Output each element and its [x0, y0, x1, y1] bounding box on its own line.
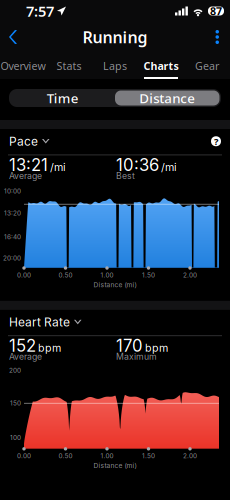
button[interactable]: Back — [0, 23, 31, 51]
staticText: 200 — [9, 366, 21, 374]
staticText: ? — [214, 135, 218, 147]
staticText: 150 — [10, 399, 21, 407]
button[interactable]: Overview — [0, 52, 46, 79]
staticText: 2.00 — [183, 452, 197, 460]
button[interactable]: Distance — [115, 90, 219, 105]
button[interactable]: More options — [201, 23, 230, 51]
staticText: Overview — [0, 59, 45, 73]
staticText: 7:57 — [26, 1, 54, 21]
button[interactable]: Stats — [46, 52, 92, 79]
staticText: 1.00 — [100, 452, 113, 460]
staticText: Stats — [56, 59, 81, 73]
staticText: /mi — [50, 160, 66, 173]
staticText: Distance (mi) — [93, 281, 136, 289]
staticText: 16:40 — [4, 233, 21, 241]
button[interactable]: Pace — [9, 130, 49, 152]
staticText: 1.50 — [142, 271, 155, 279]
staticText: 1.50 — [142, 452, 155, 460]
staticText: Average — [9, 351, 42, 362]
staticText: Maximum — [116, 351, 157, 362]
button[interactable]: Heart Rate — [9, 311, 81, 333]
button[interactable]: Charts — [138, 52, 184, 79]
staticText: 2.00 — [183, 271, 197, 279]
staticText: bpm — [145, 341, 168, 354]
staticText: /mi — [161, 160, 177, 173]
staticText: 0.50 — [58, 452, 72, 460]
staticText: 10:36 — [116, 155, 159, 175]
staticText: 13:20 — [4, 209, 21, 217]
staticText: Best — [116, 171, 135, 181]
staticText: Distance (mi) — [93, 462, 136, 470]
staticText: Distance — [139, 89, 195, 107]
staticText: 170 — [116, 336, 143, 356]
staticText: 0.00 — [17, 452, 31, 460]
staticText: Pace — [9, 134, 38, 148]
staticText: bpm — [38, 341, 61, 354]
staticText: Laps — [103, 59, 127, 73]
staticText: 87 — [210, 4, 222, 18]
staticText: 152 — [9, 336, 36, 356]
staticText: 20:00 — [3, 254, 21, 262]
staticText: 0.00 — [17, 271, 31, 279]
staticText: Gear — [195, 59, 219, 73]
staticText: Running — [82, 26, 147, 48]
button[interactable]: Laps — [92, 52, 138, 79]
staticText: 0.50 — [58, 271, 72, 279]
staticText: 1.00 — [100, 271, 113, 279]
staticText: Time — [47, 89, 79, 107]
button[interactable]: Gear — [184, 52, 230, 79]
staticText: 100 — [10, 434, 21, 441]
staticText: Charts — [143, 59, 178, 73]
button[interactable]: Time — [10, 90, 115, 105]
button[interactable]: Help — [211, 132, 221, 150]
staticText: 13:21 — [9, 155, 48, 175]
staticText: Heart Rate — [9, 315, 70, 329]
staticText: 10:00 — [4, 187, 21, 195]
staticText: Average — [9, 171, 42, 181]
